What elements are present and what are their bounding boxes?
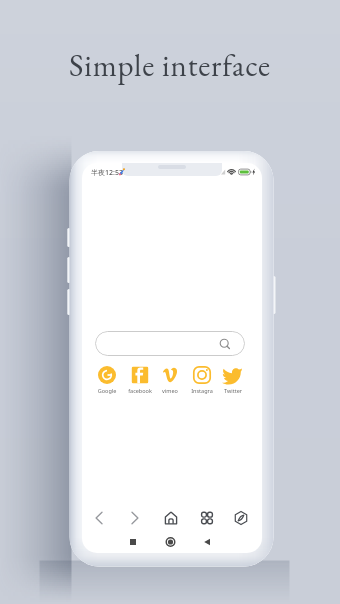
button[interactable]: Apps <box>195 506 219 530</box>
button[interactable]: Twitter <box>216 364 250 395</box>
staticText: Google <box>90 387 124 394</box>
button[interactable]: facebook <box>123 364 157 395</box>
staticText: 半夜12:53 <box>91 168 123 178</box>
button[interactable]: vimeo <box>153 364 187 395</box>
button[interactable]: Search <box>95 331 245 356</box>
button[interactable]: Explore <box>229 506 253 530</box>
staticText: facebook <box>123 387 157 394</box>
button[interactable]: Google <box>90 364 124 395</box>
staticText: Instagra <box>185 387 219 394</box>
staticText: Simple interface <box>0 45 340 85</box>
button[interactable]: Instagra <box>185 364 219 395</box>
staticText: vimeo <box>153 387 187 394</box>
staticText: Twitter <box>216 387 250 394</box>
button[interactable]: Home <box>159 506 183 530</box>
button[interactable]: Forward <box>123 506 147 530</box>
button[interactable]: Back <box>87 506 111 530</box>
